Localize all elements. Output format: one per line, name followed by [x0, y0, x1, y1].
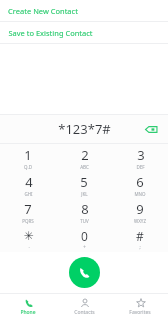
- staticText: 2: [81, 146, 89, 164]
- button[interactable]: ✳: [0, 225, 56, 252]
- staticText: JKL: [81, 191, 88, 197]
- staticText: TUV: [80, 218, 89, 224]
- staticText: .: [28, 243, 30, 249]
- button[interactable]: 4: [0, 171, 56, 198]
- button[interactable]: #: [112, 225, 168, 252]
- staticText: Q.D: [24, 164, 32, 170]
- button[interactable]: Create New Contact: [0, 0, 168, 21]
- staticText: ✳: [23, 229, 34, 243]
- staticText: *123*7#: [58, 120, 111, 138]
- staticText: +: [83, 244, 86, 250]
- staticText: ;: [139, 244, 141, 250]
- button[interactable]: 7: [0, 198, 56, 225]
- staticText: 7: [24, 200, 32, 218]
- staticText: Create New Contact: [8, 6, 78, 16]
- staticText: #: [136, 228, 144, 244]
- staticText: 0: [81, 228, 88, 244]
- button[interactable]: Contacts: [56, 294, 112, 319]
- staticText: 6: [136, 173, 144, 191]
- staticText: MNO: [134, 191, 146, 197]
- staticText: Contacts: [74, 309, 95, 316]
- button[interactable]: 1: [0, 144, 56, 171]
- button[interactable]: Save to Existing Contact: [0, 22, 168, 43]
- staticText: PQRS: [22, 218, 34, 224]
- staticText: WXYZ: [134, 218, 146, 224]
- button[interactable]: 0: [56, 225, 112, 252]
- staticText: DEF: [136, 164, 145, 170]
- button[interactable]: 2: [56, 144, 112, 171]
- staticText: 4: [25, 173, 33, 191]
- button[interactable]: Backspace: [140, 118, 162, 140]
- staticText: Save to Existing Contact: [8, 28, 93, 38]
- button[interactable]: 9: [112, 198, 168, 225]
- staticText: 3: [137, 146, 145, 164]
- staticText: Favorites: [129, 309, 151, 316]
- button[interactable]: 3: [112, 144, 168, 171]
- staticText: 5: [80, 173, 88, 191]
- staticText: 9: [136, 200, 144, 218]
- button[interactable]: Phone: [0, 294, 56, 319]
- button[interactable]: Call: [69, 257, 100, 288]
- staticText: 8: [81, 200, 89, 218]
- staticText: Phone: [20, 309, 36, 316]
- button[interactable]: 8: [56, 198, 112, 225]
- button[interactable]: 6: [112, 171, 168, 198]
- staticText: ABC: [80, 164, 89, 170]
- staticText: 1: [24, 146, 32, 164]
- button[interactable]: 5: [56, 171, 112, 198]
- staticText: GHI: [24, 191, 33, 197]
- button[interactable]: Favorites: [112, 294, 168, 319]
